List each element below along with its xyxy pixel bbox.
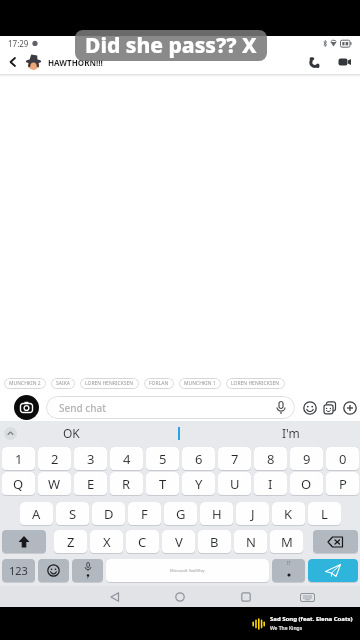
button[interactable] — [241, 592, 251, 602]
staticText: S — [69, 505, 77, 523]
button[interactable]: G — [164, 502, 197, 526]
button[interactable]: 2 — [38, 447, 71, 471]
button[interactable]: R — [110, 472, 143, 496]
button[interactable]: K — [272, 502, 305, 526]
button[interactable]: 1 — [2, 447, 35, 471]
button[interactable] — [72, 559, 103, 583]
staticText: R — [122, 475, 131, 493]
button[interactable]: H — [200, 502, 233, 526]
button[interactable]: U — [218, 472, 251, 496]
button[interactable] — [175, 592, 185, 602]
staticText: HAWTHORN!!! — [48, 57, 103, 68]
staticText: 6 — [195, 450, 203, 468]
button[interactable]: X — [90, 530, 123, 554]
staticText: 0 — [339, 450, 347, 468]
staticText: Sad Song (feat. Elena Coats) — [270, 615, 353, 623]
button[interactable]: LOREN HENRICKSEN — [80, 378, 139, 389]
staticText: Did she pass?? X — [85, 31, 257, 60]
staticText: U — [230, 475, 240, 493]
button[interactable]: T — [146, 472, 179, 496]
staticText: F — [141, 505, 148, 523]
button[interactable]: N — [234, 530, 267, 554]
button[interactable] — [110, 592, 120, 602]
button[interactable]: 9 — [290, 447, 323, 471]
button[interactable]: Y — [182, 472, 215, 496]
staticText: 123 — [9, 563, 28, 578]
button[interactable] — [2, 530, 46, 554]
button[interactable]: 123 — [2, 559, 35, 583]
button[interactable]: W — [38, 472, 71, 496]
staticText: D — [104, 505, 114, 523]
button[interactable]: J — [236, 502, 269, 526]
button[interactable] — [308, 559, 358, 583]
staticText: Y — [195, 475, 203, 493]
button[interactable] — [338, 56, 352, 68]
staticText: I — [268, 475, 273, 493]
staticText: 1 — [15, 450, 23, 468]
staticText: LOREN HENRICKSEN — [231, 380, 280, 387]
staticText: OK — [63, 425, 80, 441]
button[interactable]: 0 — [326, 447, 359, 471]
button[interactable]: MUNCHKIN 2 — [4, 378, 46, 389]
button[interactable]: Q — [2, 472, 35, 496]
button[interactable]: Send chat — [46, 396, 295, 419]
button[interactable] — [323, 401, 337, 415]
button[interactable]: V — [162, 530, 195, 554]
staticText: A — [32, 505, 41, 523]
button[interactable]: S — [56, 502, 89, 526]
staticText: LOREN HENRICKSEN — [85, 380, 134, 387]
button[interactable]: 6 — [182, 447, 215, 471]
button[interactable]: MUNCHKIN 1 — [179, 378, 221, 389]
button[interactable] — [313, 530, 358, 554]
button[interactable]: E — [74, 472, 107, 496]
staticText: B — [210, 533, 219, 551]
button[interactable]: B — [198, 530, 231, 554]
button[interactable] — [4, 427, 17, 440]
staticText: Send chat — [59, 401, 107, 415]
button[interactable]: L — [308, 502, 341, 526]
staticText: Microsoft SwiftKey — [170, 568, 205, 573]
staticText: I'm — [282, 425, 300, 441]
button[interactable]: Did she pass?? X — [75, 30, 267, 61]
staticText: V — [175, 533, 183, 551]
button[interactable]: 7 — [218, 447, 251, 471]
button[interactable]: A — [20, 502, 53, 526]
button[interactable]: O — [290, 472, 323, 496]
button[interactable]: 4 — [110, 447, 143, 471]
staticText: O — [301, 475, 312, 493]
button[interactable] — [8, 57, 18, 67]
button[interactable]: FORLAN — [144, 378, 174, 389]
button[interactable] — [276, 401, 286, 415]
staticText: W — [48, 475, 61, 493]
button[interactable]: P — [326, 472, 359, 496]
button[interactable]: M — [270, 530, 303, 554]
button[interactable]: SAIKA — [51, 378, 75, 389]
staticText: Z — [67, 533, 75, 551]
button[interactable]: !? — [272, 559, 305, 583]
button[interactable]: I — [254, 472, 287, 496]
button[interactable] — [14, 395, 39, 420]
button[interactable]: Z — [54, 530, 87, 554]
button[interactable] — [343, 401, 357, 415]
button[interactable]: C — [126, 530, 159, 554]
button[interactable] — [300, 593, 315, 602]
button[interactable] — [309, 56, 321, 68]
staticText: MUNCHKIN 2 — [9, 380, 41, 387]
staticText: L — [321, 505, 328, 523]
button[interactable]: 5 — [146, 447, 179, 471]
button[interactable]: Microsoft SwiftKey — [106, 559, 269, 583]
button[interactable] — [38, 559, 69, 583]
button[interactable] — [40, 421, 102, 446]
staticText: G — [176, 505, 186, 523]
staticText: J — [251, 505, 255, 523]
button[interactable]: F — [128, 502, 161, 526]
button[interactable] — [303, 401, 317, 415]
staticText: P — [339, 475, 347, 493]
button[interactable]: 3 — [74, 447, 107, 471]
button[interactable]: D — [92, 502, 125, 526]
button[interactable]: 8 — [254, 447, 287, 471]
staticText: C — [138, 533, 147, 551]
staticText: X — [103, 533, 111, 551]
button[interactable]: LOREN HENRICKSEN — [226, 378, 285, 389]
staticText: !? — [287, 560, 291, 567]
